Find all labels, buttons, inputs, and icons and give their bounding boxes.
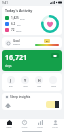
staticText: bpm: [16, 29, 22, 32]
button[interactable]: 16,721: [2, 50, 62, 71]
staticText: Today's Activity: [5, 8, 33, 13]
staticText: steps: [5, 64, 12, 68]
button[interactable]: Goal: [2, 37, 62, 48]
staticText: weekly: [13, 43, 21, 46]
button[interactable]: Run: [6, 75, 16, 89]
staticText: Trends: [37, 126, 43, 128]
staticText: 9:41: [2, 1, 8, 5]
staticText: Hike: [37, 85, 42, 88]
button[interactable]: Hike: [34, 75, 44, 89]
staticText: 82: [46, 40, 49, 43]
staticText: Run: [9, 85, 13, 88]
staticText: 72: [11, 28, 15, 32]
staticText: Profile: [52, 126, 58, 128]
staticText: 6.2: [11, 22, 16, 26]
staticText: Goal: [13, 39, 20, 43]
staticText: kcal: [20, 17, 25, 20]
button[interactable]: More: [48, 75, 58, 89]
button[interactable]: Sleep insights: [2, 93, 62, 110]
staticText: 1,425: [11, 16, 19, 20]
button[interactable]: Yoga: [20, 75, 30, 89]
button[interactable]: Activity: [18, 119, 30, 129]
button[interactable]: Today's Activity: [2, 6, 62, 35]
staticText: Yoga: [23, 85, 28, 88]
button[interactable]: Trends: [34, 119, 46, 129]
staticText: Home: [6, 126, 12, 128]
staticText: J: [10, 78, 12, 83]
button[interactable]: Profile: [49, 119, 61, 129]
staticText: Sleep insights: [10, 95, 31, 99]
staticText: 16,721: [5, 53, 28, 63]
staticText: Y: [24, 78, 27, 83]
staticText: H: [38, 78, 41, 83]
button[interactable]: Steps detail: [51, 53, 59, 58]
staticText: Activity: [21, 126, 28, 128]
button[interactable]: Home: [3, 119, 15, 129]
staticText: km: [17, 23, 21, 26]
staticText: More: [51, 85, 56, 88]
